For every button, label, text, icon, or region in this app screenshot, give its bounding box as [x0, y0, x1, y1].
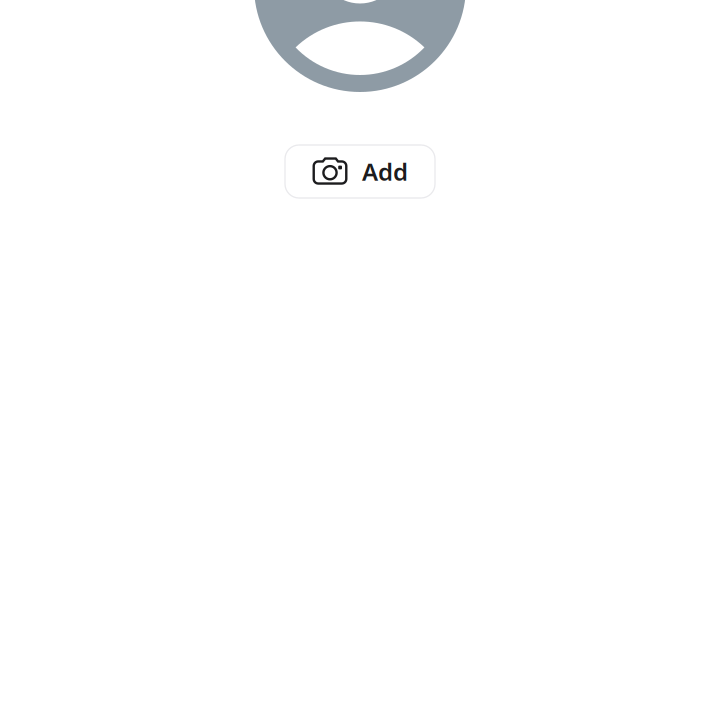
staticText: Add [362, 156, 408, 187]
button[interactable]: Add [285, 145, 435, 198]
